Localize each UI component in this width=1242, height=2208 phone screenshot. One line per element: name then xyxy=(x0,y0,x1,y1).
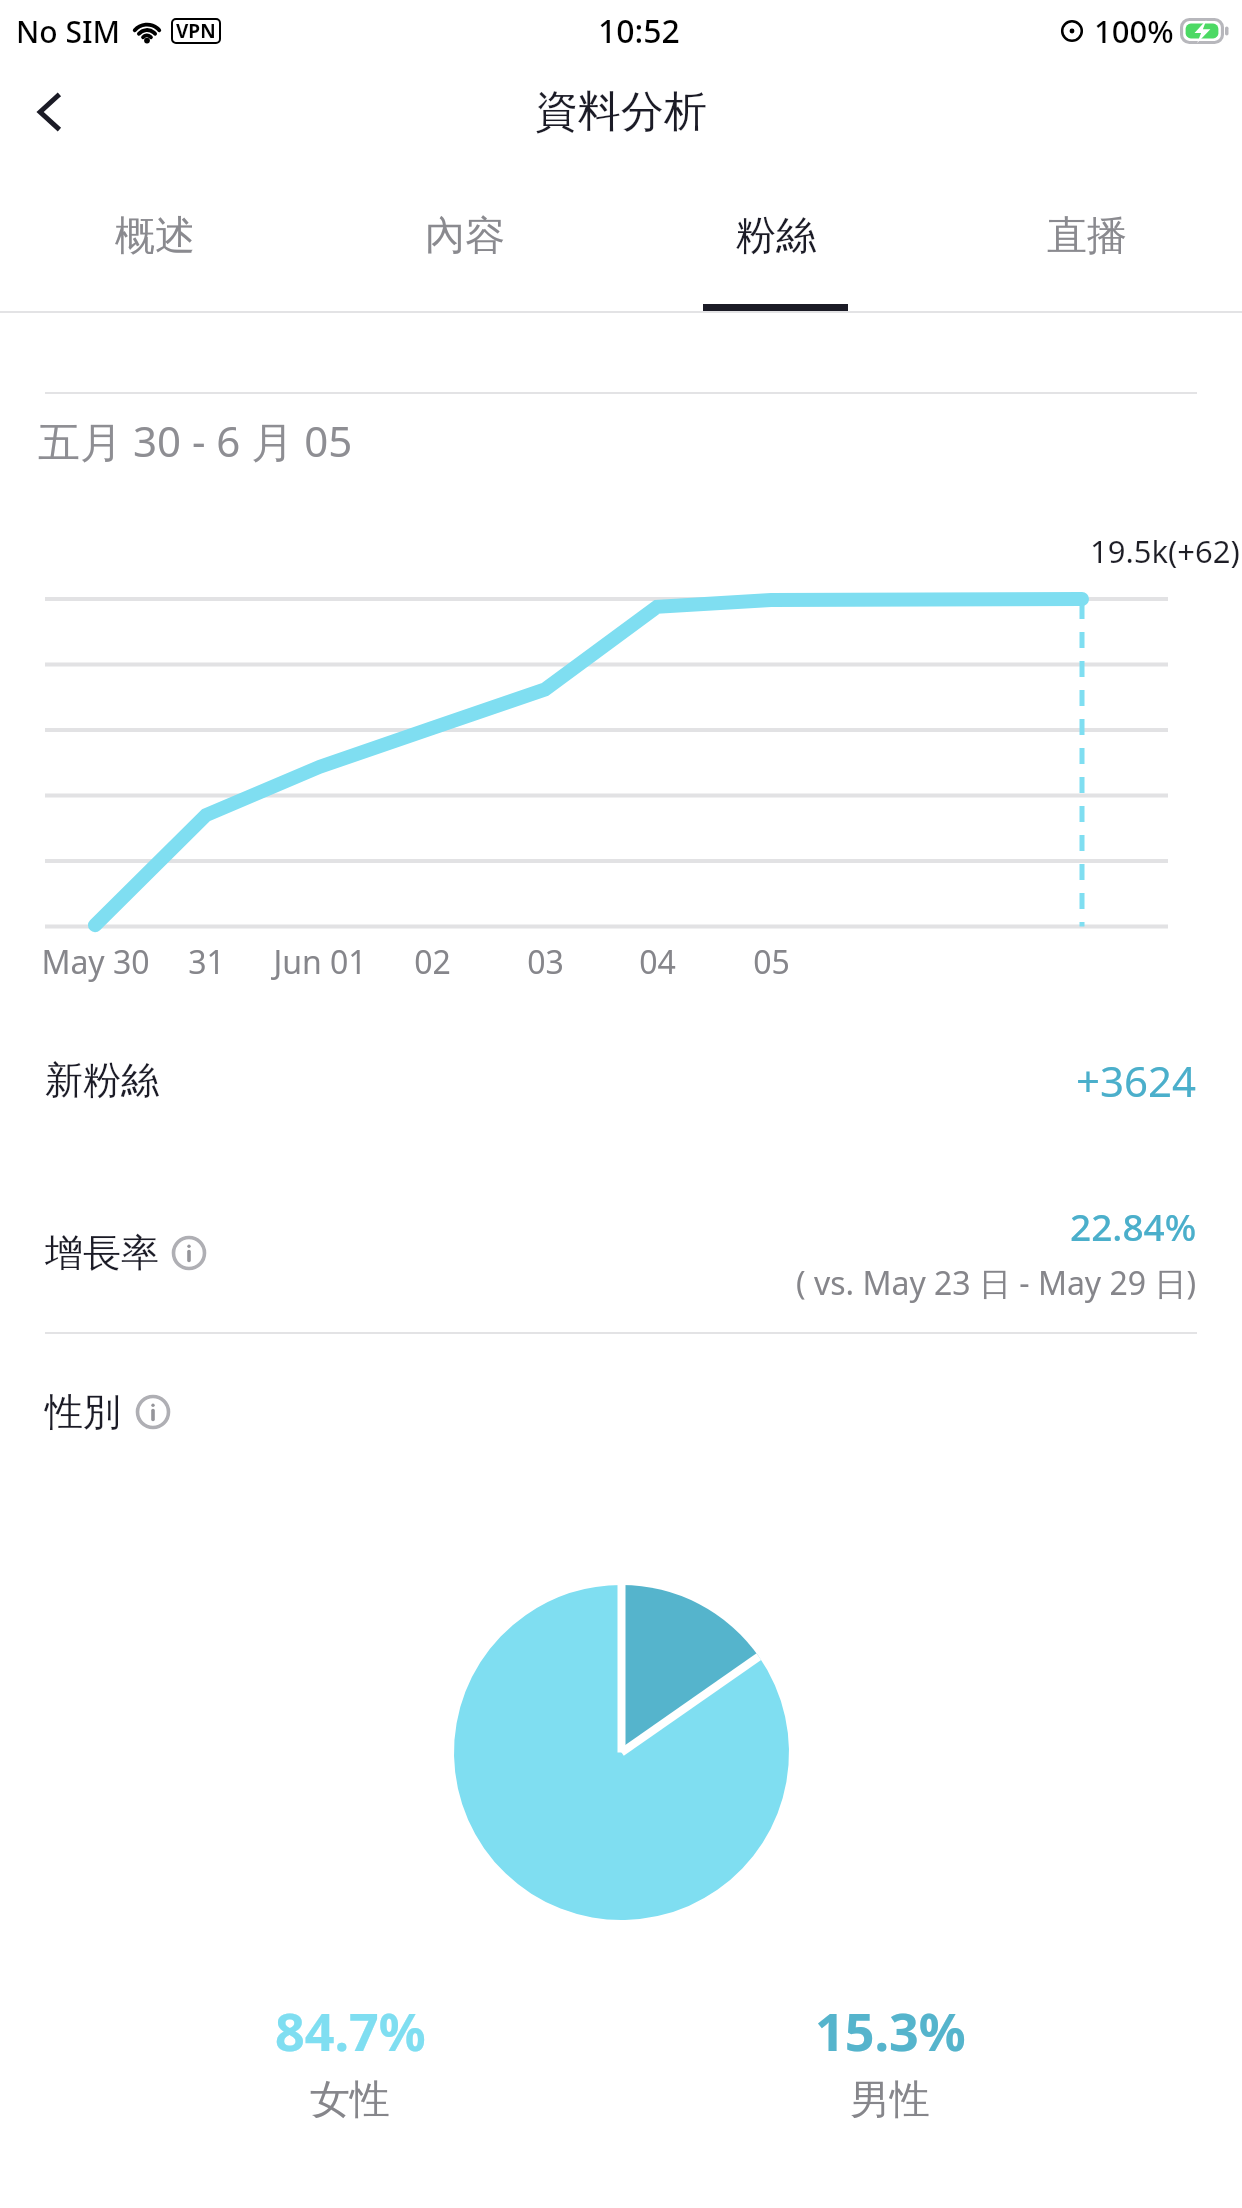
button[interactable]: 內容 xyxy=(310,180,620,311)
staticText: No SIM xyxy=(16,11,121,52)
button[interactable]: 增長率 xyxy=(0,1175,1242,1330)
staticText: 04 xyxy=(639,940,676,984)
staticText: 內容 xyxy=(425,210,505,260)
staticText: May 30 xyxy=(41,940,150,984)
staticText: 粉絲 xyxy=(736,210,816,260)
button[interactable]: Back xyxy=(14,76,86,148)
button[interactable]: 新粉絲 xyxy=(0,1020,1242,1140)
staticText: 100% xyxy=(1094,10,1174,52)
staticText: ( vs. May 23 日 - May 29 日) xyxy=(796,1261,1197,1305)
staticText: 新粉絲 xyxy=(45,1056,159,1104)
staticText: 性別 xyxy=(45,1388,121,1436)
staticText: VPN xyxy=(176,18,216,44)
staticText: +3624 xyxy=(1076,1052,1197,1109)
button[interactable]: 概述 xyxy=(0,180,310,311)
staticText: 19.5k(+62) xyxy=(1090,530,1240,572)
staticText: Jun 01 xyxy=(273,940,367,984)
button[interactable]: 粉絲 xyxy=(620,180,931,311)
staticText: 直播 xyxy=(1047,210,1127,260)
staticText: 02 xyxy=(414,940,451,984)
staticText: 10:52 xyxy=(598,9,680,53)
staticText: 增長率 xyxy=(45,1229,159,1277)
staticText: 五月 30 - 6 月 05 xyxy=(38,412,353,469)
staticText: 05 xyxy=(753,940,790,984)
staticText: 31 xyxy=(188,940,225,984)
button[interactable]: 直播 xyxy=(931,180,1242,311)
staticText: 22.84% xyxy=(1070,1201,1197,1251)
staticText: 84.7% xyxy=(275,1995,426,2066)
staticText: 資料分析 xyxy=(535,85,707,139)
staticText: 概述 xyxy=(115,210,195,260)
staticText: 03 xyxy=(527,940,564,984)
staticText: 15.3% xyxy=(815,1995,966,2066)
staticText: 女性 xyxy=(310,2074,390,2124)
staticText: 男性 xyxy=(850,2074,930,2124)
